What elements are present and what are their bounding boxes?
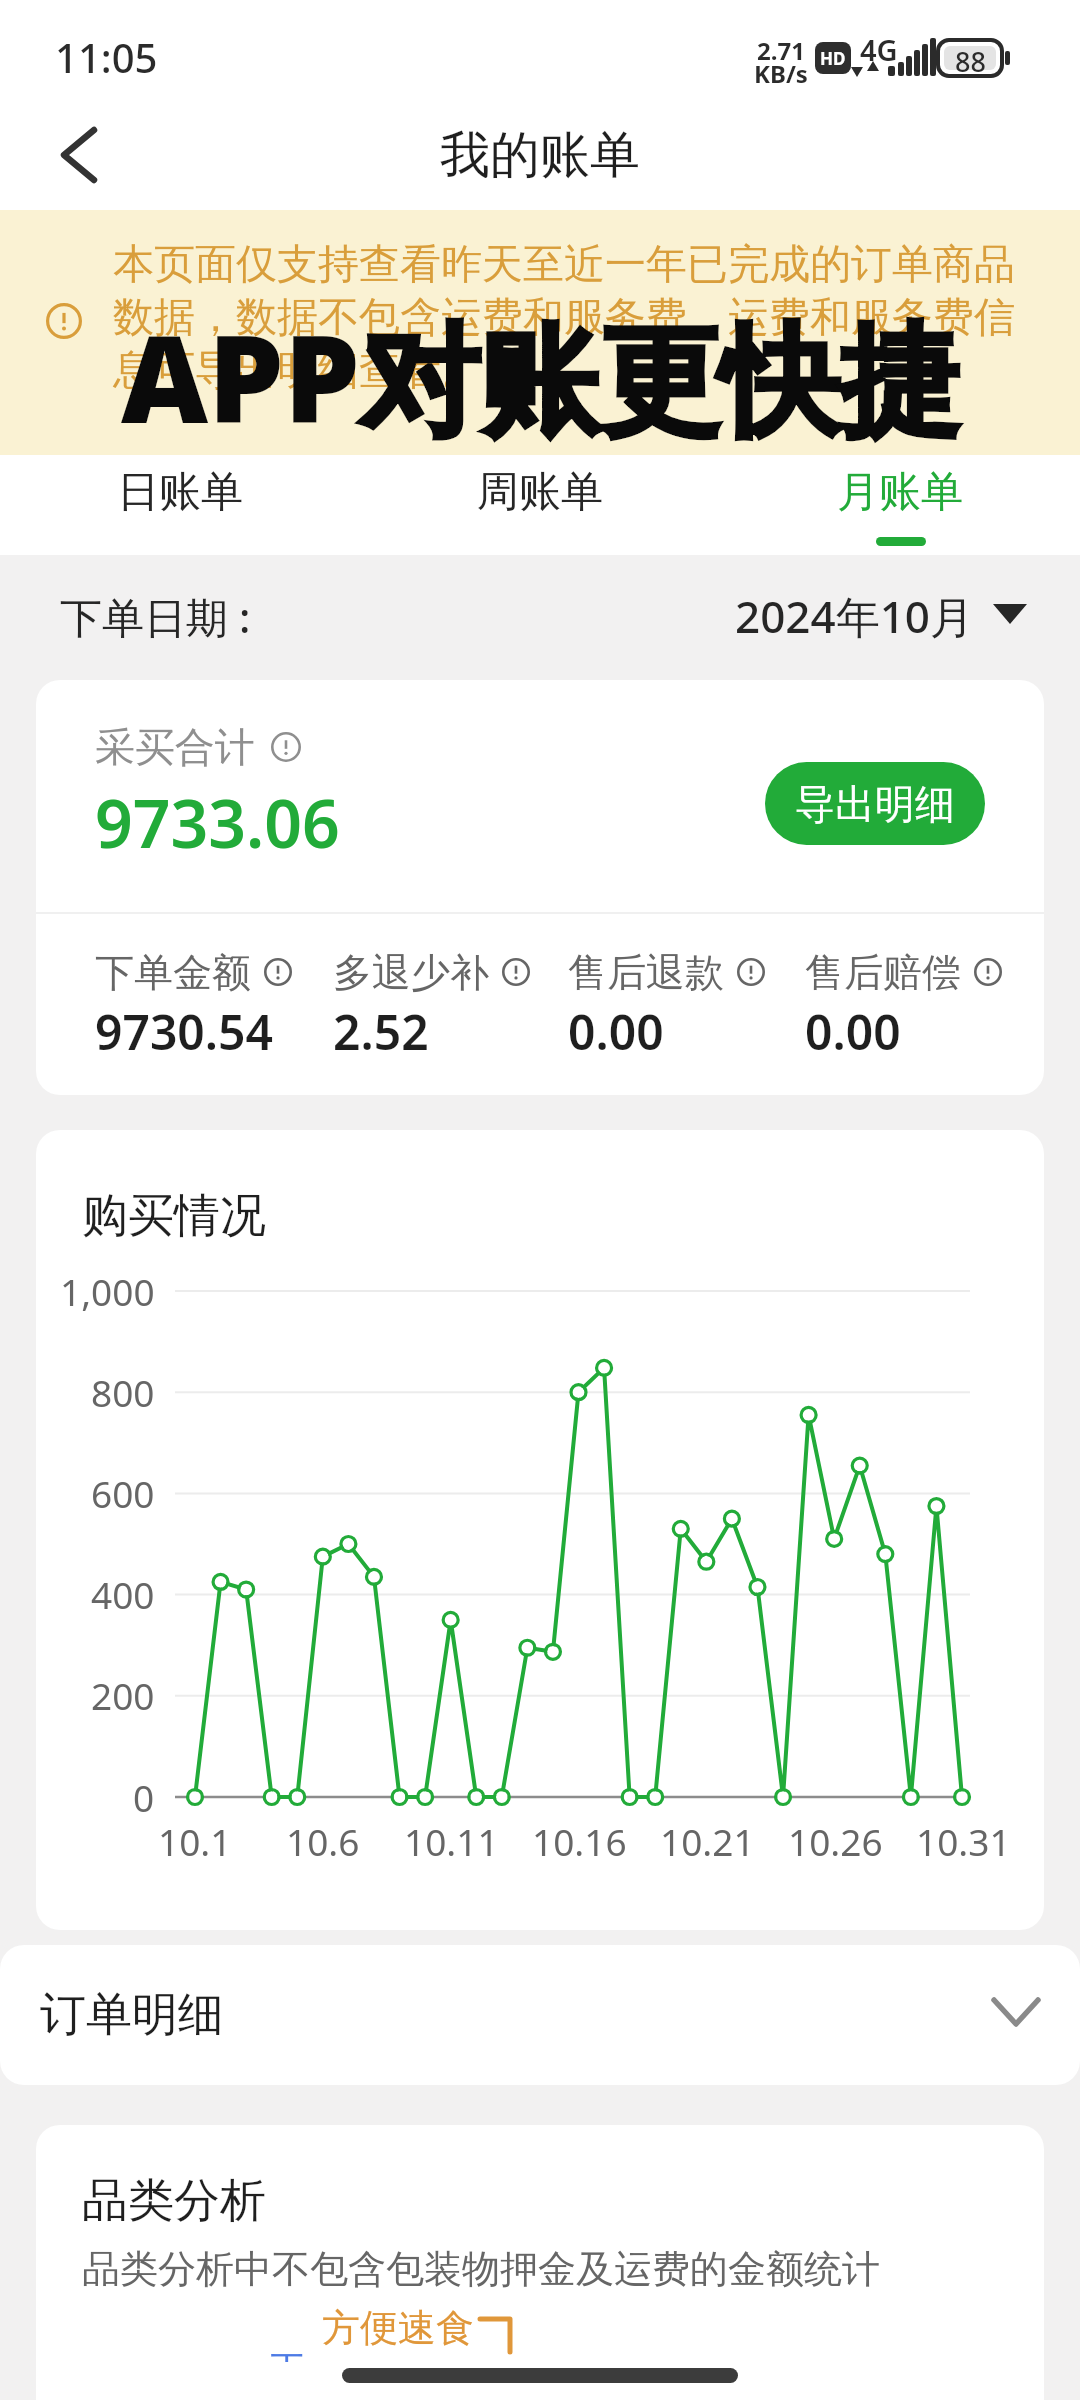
- staticText: 品类分析: [82, 2172, 266, 2230]
- staticText: 多退少补: [333, 948, 489, 997]
- staticText: 10.21: [660, 1816, 755, 1866]
- staticText: 800: [91, 1367, 155, 1417]
- button[interactable]: [0, 1945, 1080, 2085]
- staticText: 方便速食: [322, 2304, 474, 2352]
- staticText: 本页面仅支持查看昨天至近一年已完成的订单商品: [113, 239, 1015, 291]
- staticText: 10.11: [404, 1816, 499, 1866]
- button[interactable]: 日账单: [105, 447, 255, 537]
- staticText: 数据，数据不包含运费和服务费，运费和服务费信: [113, 292, 1015, 344]
- button[interactable]: [58, 126, 102, 184]
- staticText: 2.52: [333, 999, 429, 1064]
- staticText: 玉米: [268, 2346, 338, 2362]
- staticText: 采买合计: [95, 722, 255, 772]
- staticText: 品类分析中不包含包装物押金及运费的金额统计: [82, 2245, 880, 2293]
- staticText: 10.26: [788, 1816, 883, 1866]
- staticText: 600: [91, 1468, 155, 1518]
- staticText: 10.16: [532, 1816, 627, 1866]
- button[interactable]: 2024年10月: [700, 576, 1040, 656]
- staticText: 4G: [860, 30, 898, 69]
- staticText: 200: [91, 1670, 155, 1720]
- staticText: 售后赔偿: [805, 948, 961, 997]
- staticText: 10.6: [286, 1816, 360, 1866]
- staticText: 2.71: [757, 34, 805, 60]
- staticText: 10.1: [158, 1816, 232, 1866]
- staticText: 9730.54: [95, 999, 273, 1064]
- staticText: 周账单: [477, 466, 603, 519]
- staticText: 0.00: [568, 999, 664, 1064]
- staticText: 日账单: [117, 466, 243, 519]
- staticText: 11:05: [55, 30, 158, 84]
- staticText: 2024年10月: [735, 586, 975, 646]
- staticText: 0: [133, 1772, 155, 1822]
- staticText: 息可导出明细查看。: [113, 345, 482, 397]
- staticText: 订单明细: [40, 1986, 224, 2044]
- staticText: 购买情况: [82, 1187, 266, 1245]
- staticText: 9733.06: [95, 777, 340, 867]
- button[interactable]: 导出明细: [765, 762, 985, 845]
- staticText: 导出明细: [795, 779, 955, 829]
- staticText: 1,000: [60, 1266, 155, 1316]
- staticText: 0.00: [805, 999, 901, 1064]
- button[interactable]: 周账单: [465, 447, 615, 537]
- staticText: HD: [820, 47, 846, 70]
- staticText: 我的账单: [440, 124, 640, 187]
- staticText: APP对账更快捷: [121, 295, 960, 459]
- staticText: 售后退款: [568, 948, 724, 997]
- staticText: 月账单: [837, 466, 963, 519]
- staticText: 下单金额: [95, 948, 251, 997]
- staticText: KB/s: [754, 57, 808, 83]
- staticText: 10.31: [916, 1816, 1011, 1866]
- staticText: 下单日期 :: [60, 588, 251, 645]
- button[interactable]: 月账单: [825, 447, 975, 537]
- staticText: 88: [955, 43, 986, 73]
- staticText: 400: [91, 1569, 155, 1619]
